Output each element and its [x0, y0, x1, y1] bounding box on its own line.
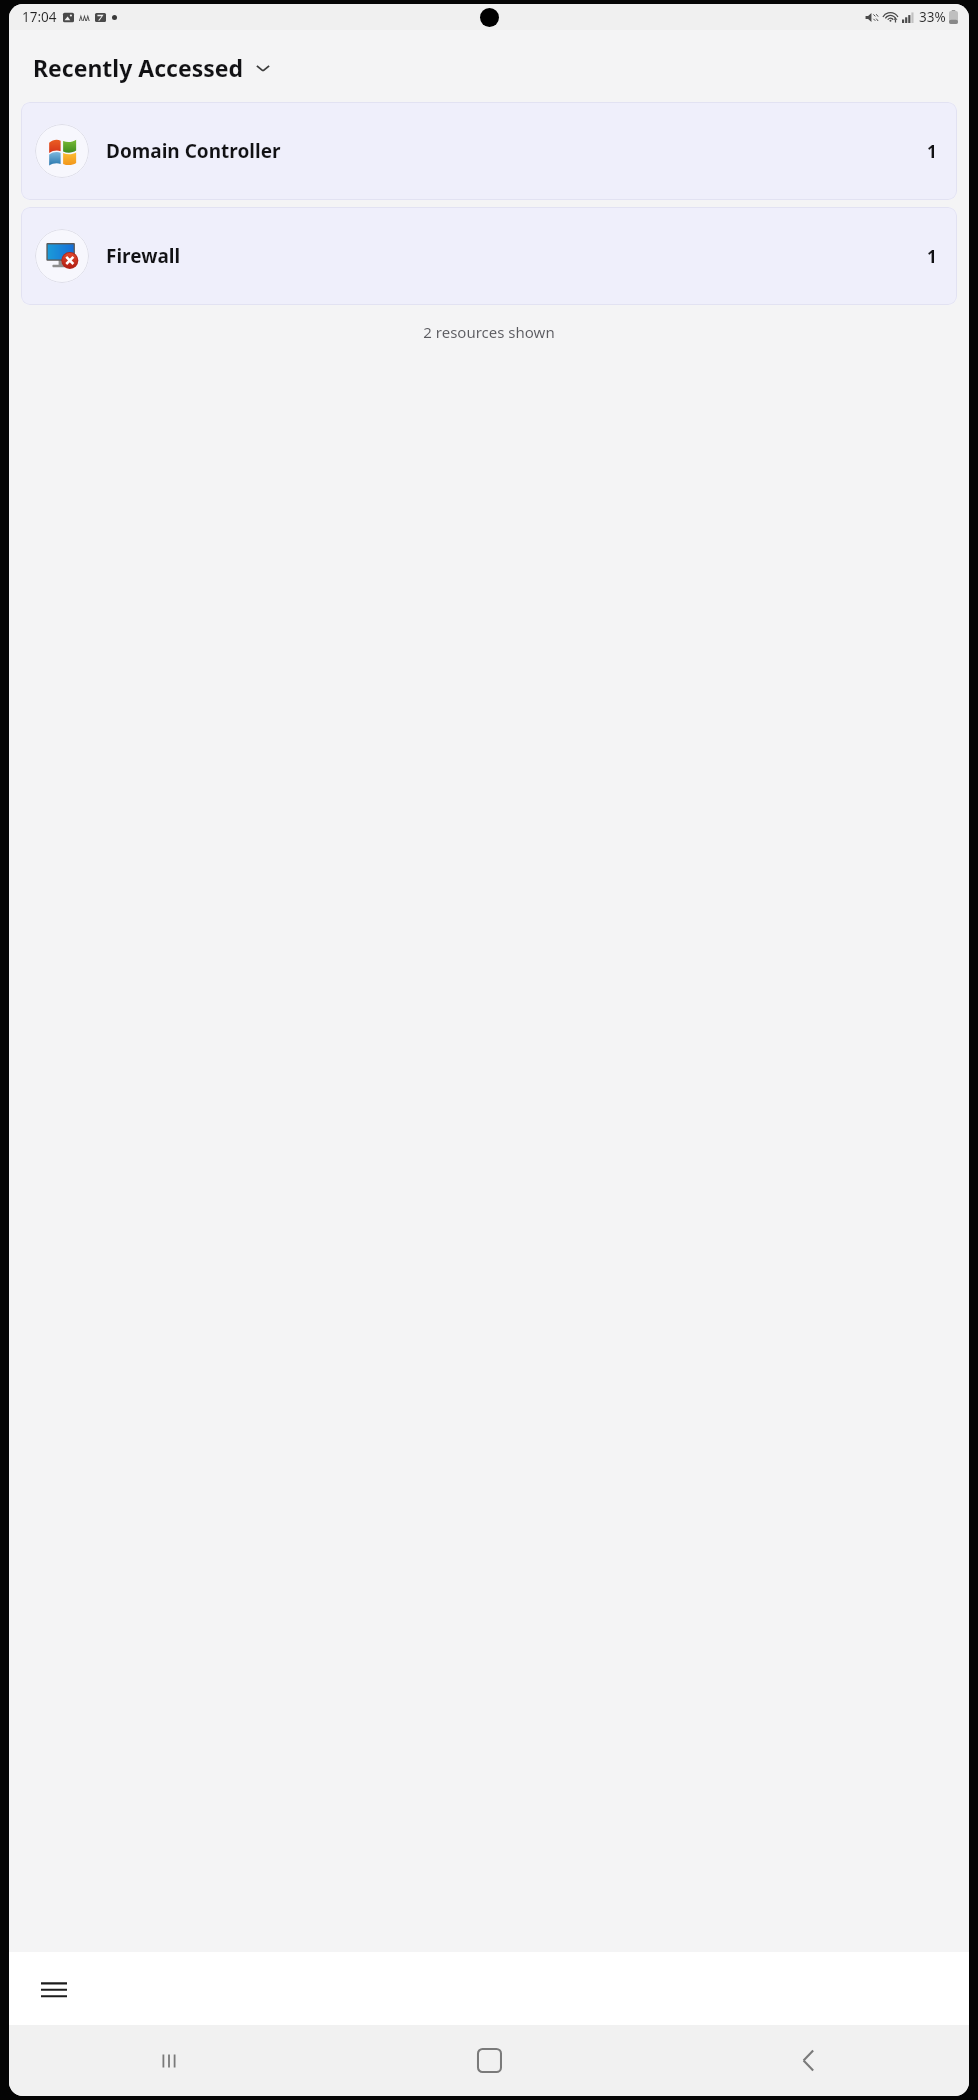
other: Expand filter [254, 59, 272, 77]
staticText: 17:04 [22, 8, 57, 26]
button[interactable]: Recently Accessed [33, 52, 945, 83]
staticText: Recently Accessed [33, 52, 244, 83]
button[interactable]: Back [649, 2025, 969, 2096]
staticText: 2 resources shown [9, 322, 969, 342]
button[interactable]: Menu [31, 1966, 77, 2012]
staticText: Domain Controller [106, 138, 927, 164]
staticText: 1 [927, 140, 937, 163]
staticText: 33% [919, 8, 946, 26]
button[interactable]: Firewall [21, 207, 957, 305]
button[interactable]: Domain Controller [21, 102, 957, 200]
staticText: 1 [927, 245, 937, 268]
button[interactable]: Home [329, 2025, 649, 2096]
staticText: Firewall [106, 243, 927, 269]
button[interactable]: Recent apps [9, 2025, 329, 2096]
